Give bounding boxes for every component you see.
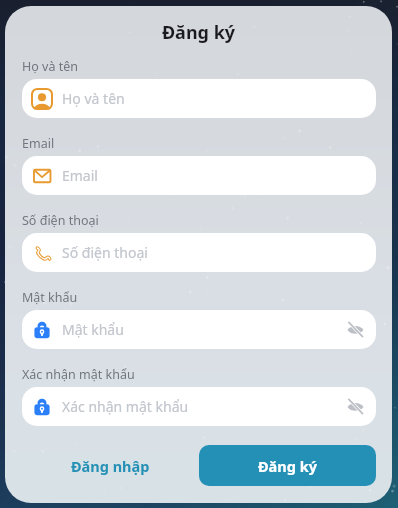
staticText: Họ và tên <box>22 58 78 75</box>
other: Hiện mật khẩu <box>346 320 365 339</box>
button[interactable]: Email <box>22 156 376 195</box>
button[interactable]: Đăng ký <box>199 445 376 486</box>
staticText: Đăng ký <box>258 456 317 476</box>
staticText: Số điện thoại <box>22 212 99 229</box>
button[interactable]: Họ và tên <box>22 79 376 118</box>
staticText: Mật khẩu <box>62 320 124 339</box>
staticText: Xác nhận mật khẩu <box>62 397 189 416</box>
button[interactable]: Số điện thoại <box>22 233 376 272</box>
staticText: Đăng nhập <box>71 456 150 476</box>
button[interactable]: Mật khẩu <box>22 310 376 349</box>
button[interactable]: Xác nhận mật khẩu <box>22 387 376 426</box>
staticText: Họ và tên <box>62 89 125 108</box>
staticText: Mật khẩu <box>22 289 78 306</box>
staticText: Số điện thoại <box>62 243 148 262</box>
staticText: Email <box>62 166 98 185</box>
button[interactable]: Đăng nhập <box>22 445 199 486</box>
other: Hiện mật khẩu <box>346 397 365 416</box>
staticText: Email <box>22 135 55 152</box>
staticText: Xác nhận mật khẩu <box>22 366 135 383</box>
staticText: Đăng ký <box>5 20 392 45</box>
